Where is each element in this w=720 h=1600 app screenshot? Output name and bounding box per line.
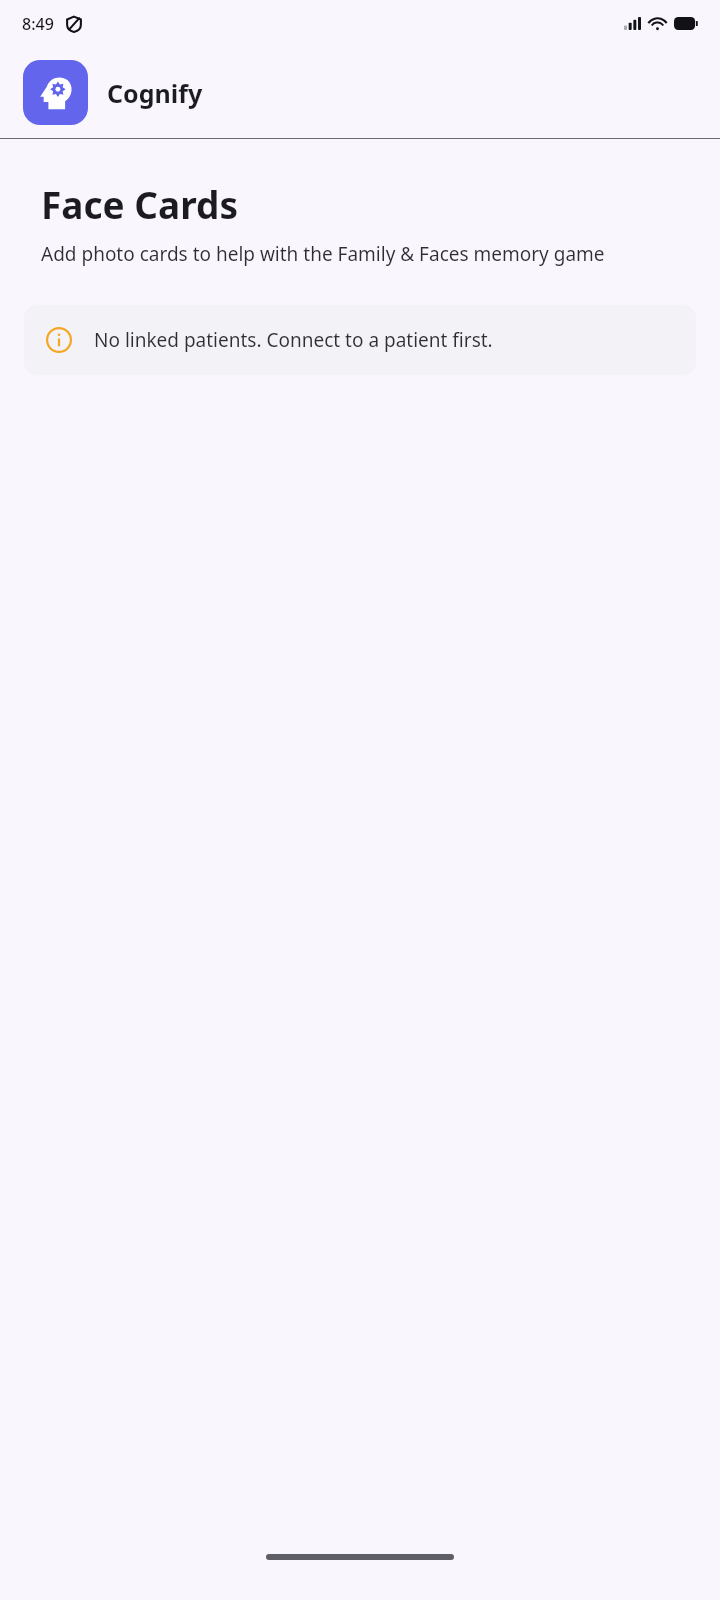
button[interactable]: No linked patients. Connect to a patient… — [24, 305, 696, 375]
staticText: Cognify — [107, 76, 203, 110]
staticText: Add photo cards to help with the Family … — [41, 241, 696, 267]
staticText: 8:49 — [22, 13, 54, 35]
button[interactable]: Cognify home — [23, 60, 88, 125]
staticText: No linked patients. Connect to a patient… — [94, 327, 493, 353]
staticText: Face Cards — [41, 179, 238, 229]
